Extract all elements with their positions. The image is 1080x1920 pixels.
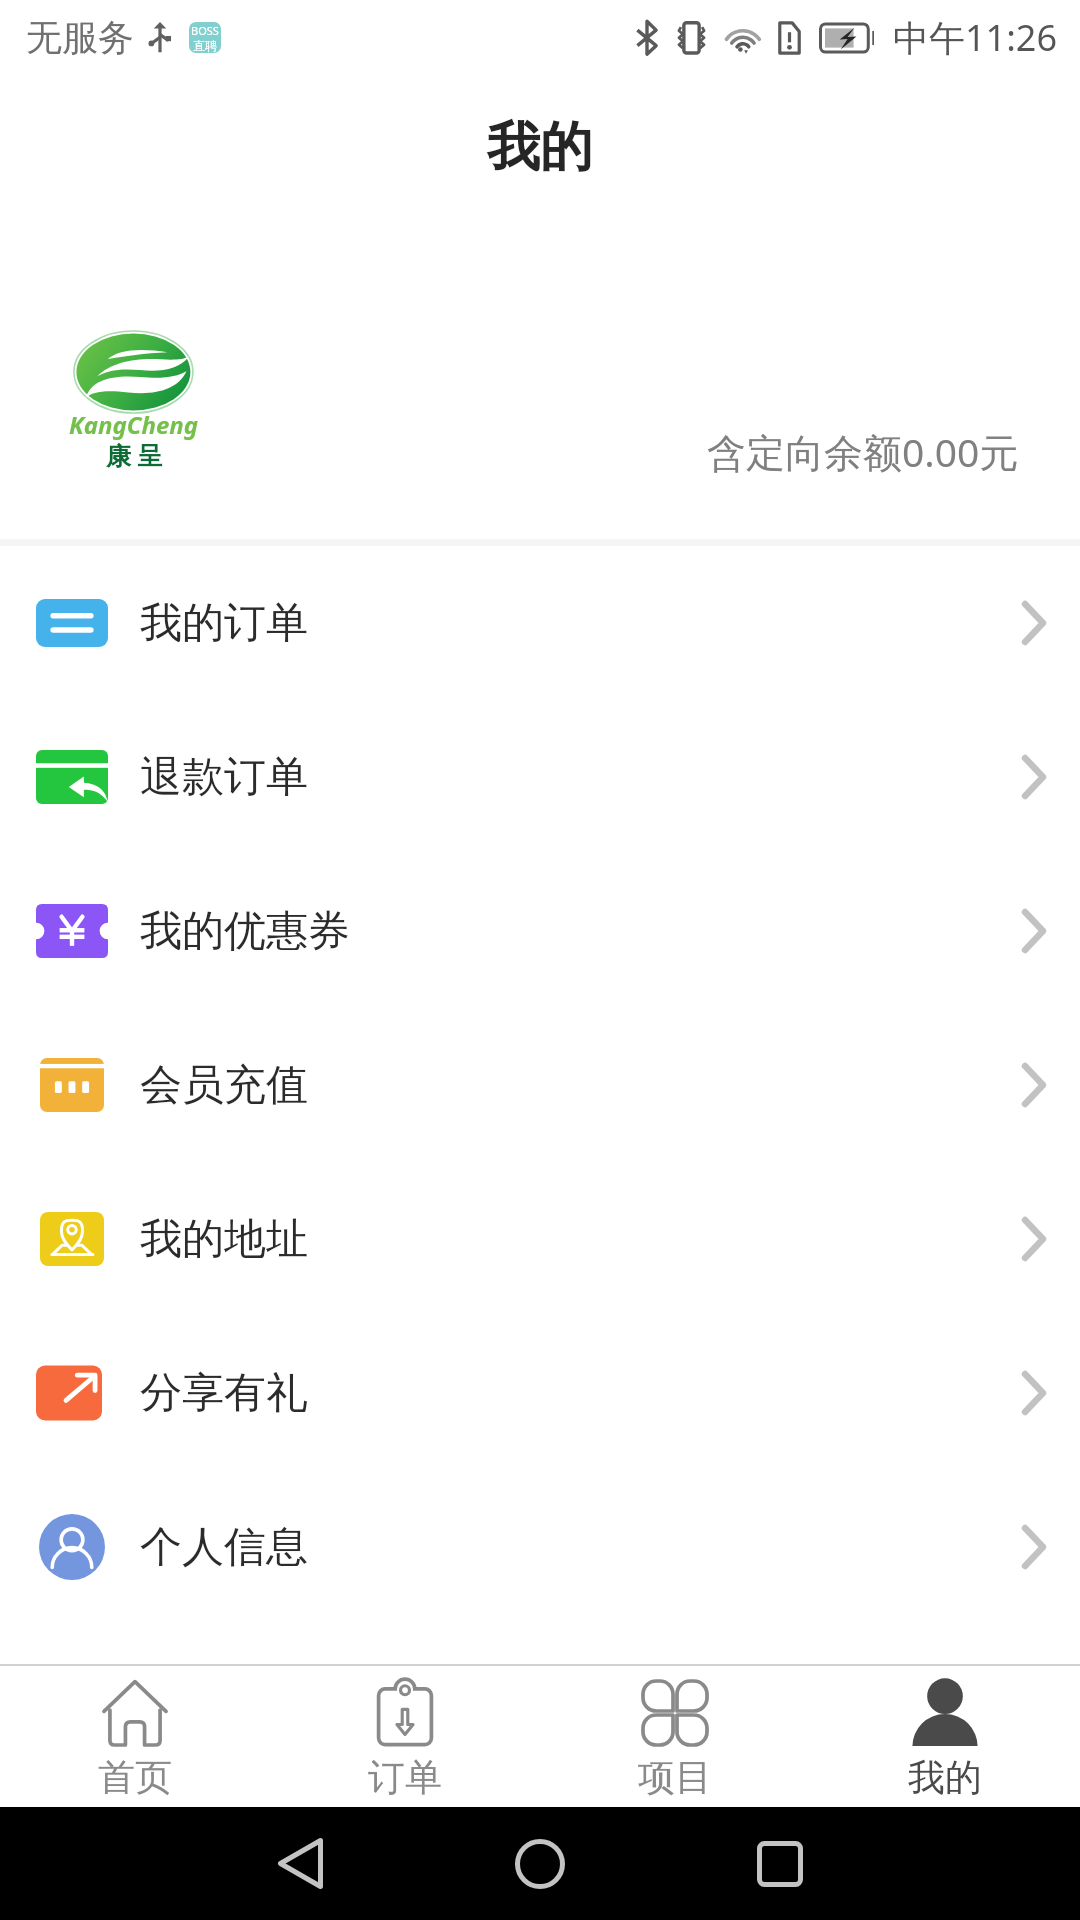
button[interactable]: 会员充值 — [0, 1008, 1080, 1162]
button[interactable]: 退款订单 — [0, 700, 1080, 854]
staticText: 会员充值 — [140, 1059, 308, 1112]
staticText: 无服务 — [26, 15, 134, 60]
staticText: 我的优惠券 — [140, 905, 350, 958]
staticText: 分享有礼 — [140, 1367, 308, 1420]
button[interactable]: 我的优惠券 — [0, 854, 1080, 1008]
staticText: 康 呈 — [106, 438, 163, 472]
staticText: 我的 — [908, 1754, 982, 1801]
staticText: 退款订单 — [140, 751, 308, 804]
staticText: 含定向余额0.00元 — [707, 425, 1019, 478]
staticText: 个人信息 — [140, 1521, 308, 1574]
staticText: 我的地址 — [140, 1213, 308, 1266]
staticText: 直聘 — [193, 38, 217, 53]
button[interactable]: 分享有礼 — [0, 1316, 1080, 1470]
button[interactable]: 我的 — [810, 1666, 1080, 1807]
staticText: BOSS — [191, 23, 219, 38]
button[interactable]: 订单 — [270, 1666, 540, 1807]
button[interactable]: Back — [180, 1807, 420, 1920]
staticText: 中午11:26 — [893, 13, 1058, 62]
staticText: 首页 — [98, 1754, 172, 1801]
button[interactable]: Recents — [660, 1807, 900, 1920]
button[interactable]: 个人信息 — [0, 1470, 1080, 1624]
button[interactable]: 我的订单 — [0, 546, 1080, 700]
button[interactable]: 首页 — [0, 1666, 270, 1807]
button[interactable]: 我的地址 — [0, 1162, 1080, 1316]
staticText: 我的 — [487, 114, 593, 181]
staticText: 订单 — [368, 1754, 442, 1801]
staticText: KangCheng — [69, 408, 199, 441]
button[interactable]: Home — [420, 1807, 660, 1920]
staticText: 我的订单 — [140, 597, 308, 650]
button[interactable]: 项目 — [540, 1666, 810, 1807]
staticText: 项目 — [638, 1754, 712, 1801]
